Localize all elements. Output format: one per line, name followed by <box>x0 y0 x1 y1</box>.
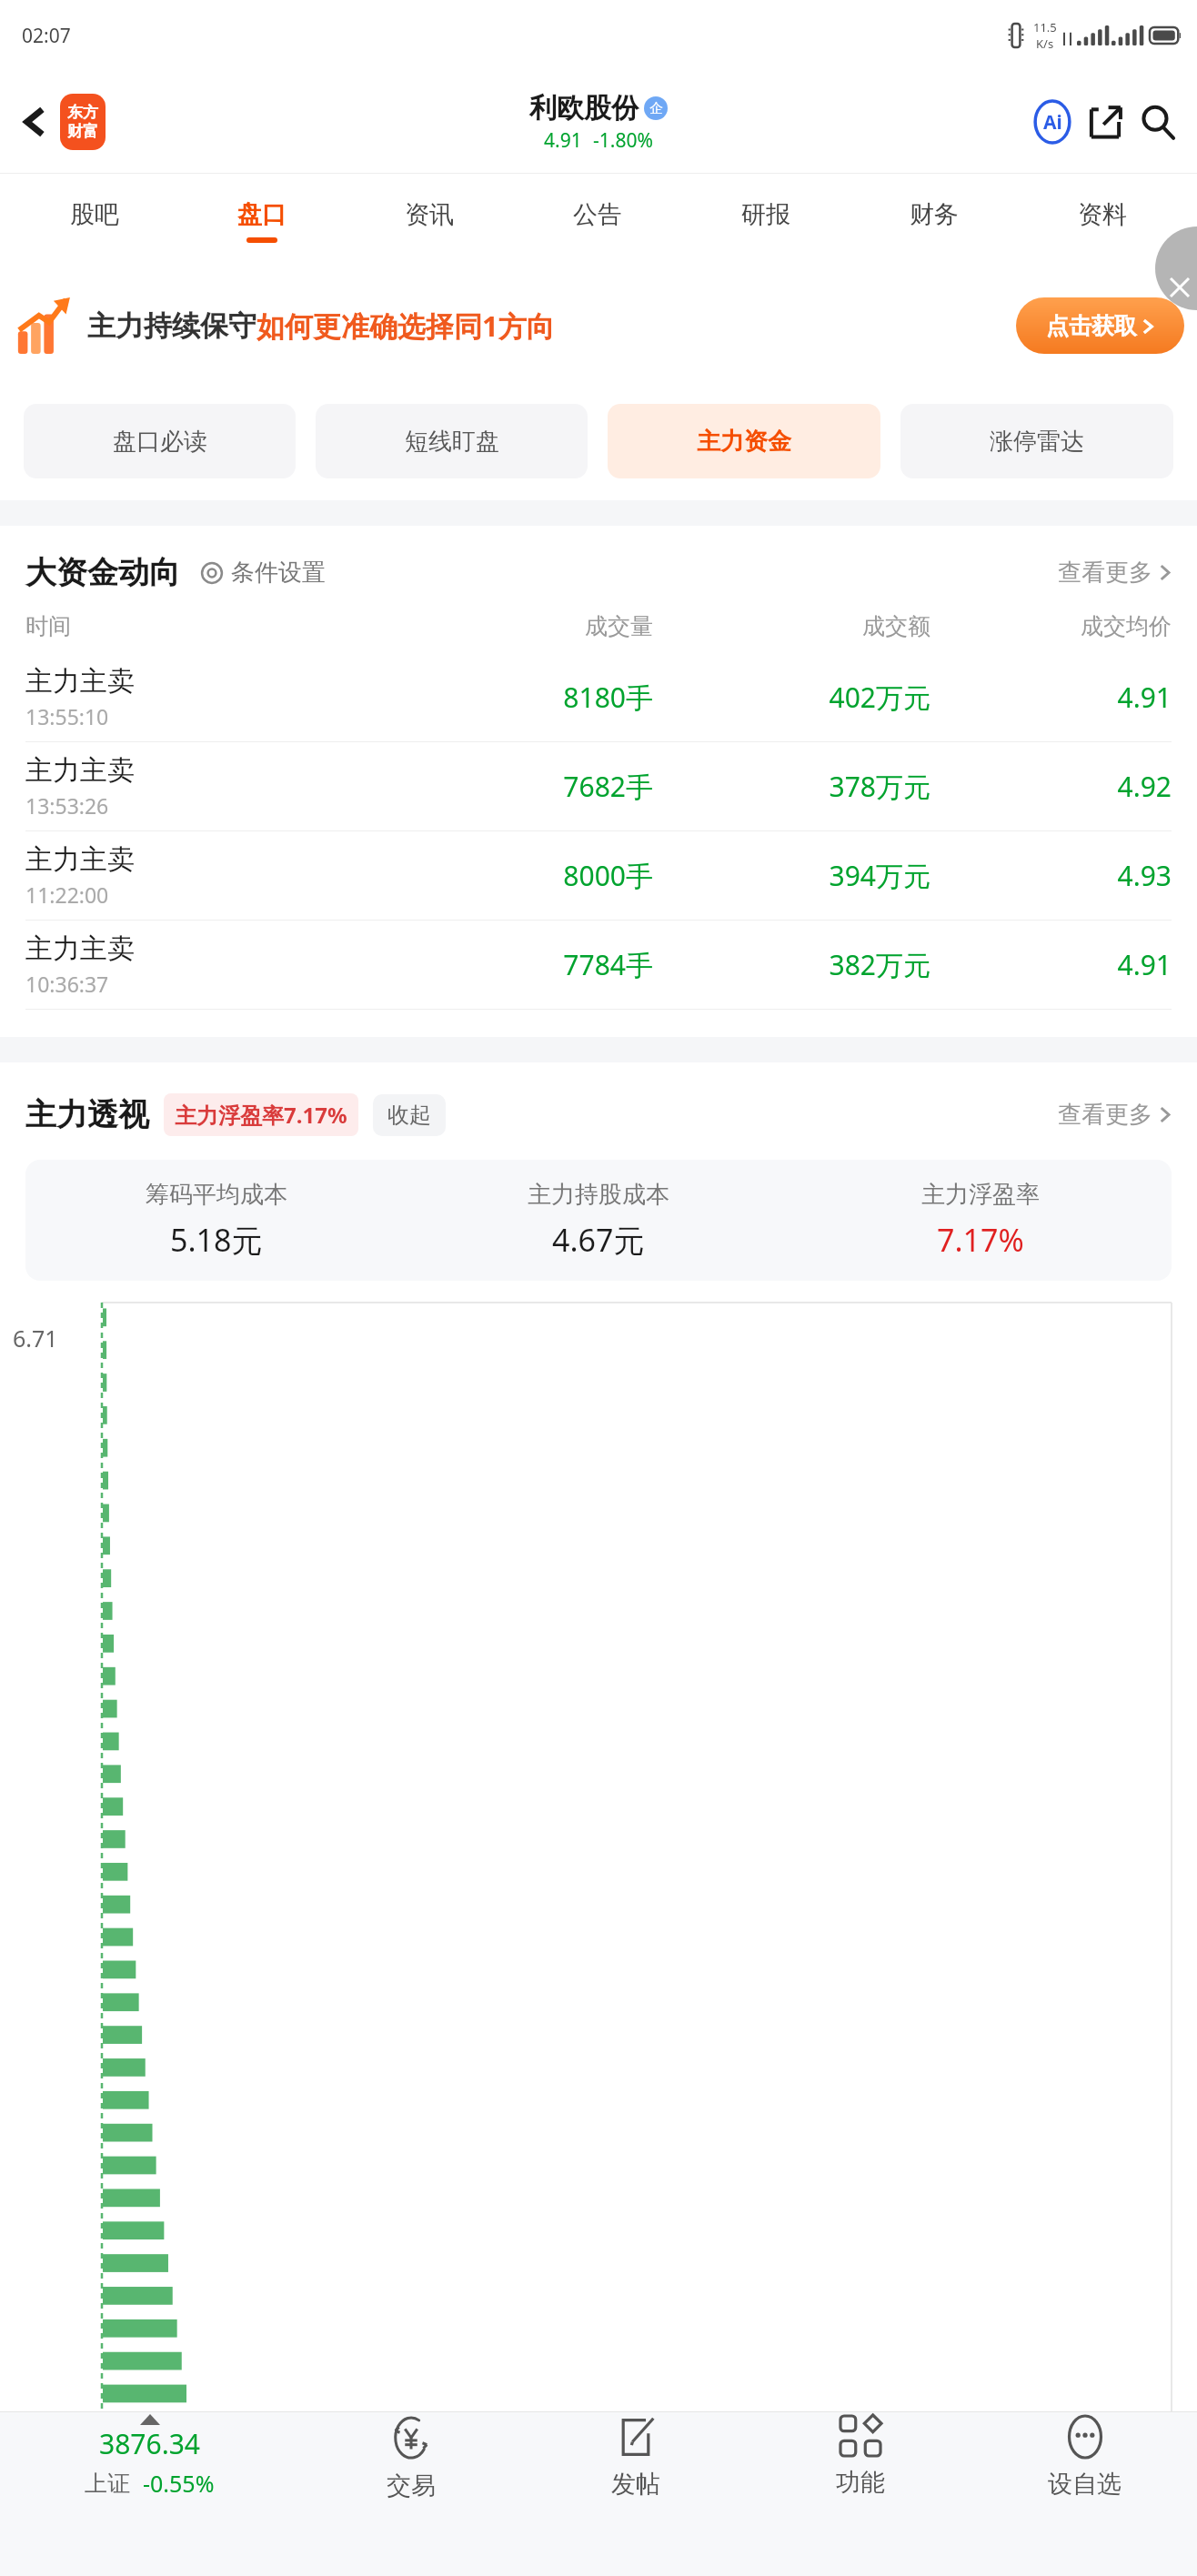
staticText: 02:07 <box>22 23 71 49</box>
staticText: 主力浮盈率7.17% <box>175 1100 347 1130</box>
button[interactable]: 资料 <box>1018 173 1186 268</box>
button[interactable]: 东方财富 <box>60 94 106 150</box>
staticText: 主力透视 <box>25 1095 149 1134</box>
staticText: 功能 <box>836 2467 885 2498</box>
staticText: 8000手 <box>351 857 653 894</box>
button[interactable]: AI <box>1026 96 1079 148</box>
staticText: 11:22:00 <box>25 880 109 909</box>
button[interactable]: 3876.34 <box>0 2412 298 2576</box>
button[interactable]: 股吧 <box>11 173 178 268</box>
button[interactable]: 资讯 <box>346 173 513 268</box>
staticText: 成交均价 <box>930 612 1172 640</box>
staticText: 研报 <box>741 199 790 230</box>
staticText: 时间 <box>25 612 351 640</box>
staticText: 4.91 <box>544 127 582 154</box>
staticText: 4.92 <box>930 768 1172 805</box>
staticText: 主力主卖 <box>25 931 135 966</box>
staticText: 资讯 <box>405 199 454 230</box>
staticText: K/s <box>1036 35 1054 52</box>
button[interactable]: 主力浮盈率7.17% <box>164 1093 358 1136</box>
button[interactable]: 主力主卖 <box>0 921 1197 1009</box>
staticText: 股吧 <box>70 199 119 230</box>
button[interactable]: 查看更多 <box>1058 1100 1172 1130</box>
button[interactable]: 短线盯盘 <box>316 404 588 478</box>
staticText: 发帖 <box>611 2469 660 2500</box>
button[interactable]: 盘口必读 <box>24 404 296 478</box>
staticText: 7682手 <box>351 768 653 805</box>
staticText: 公告 <box>573 199 622 230</box>
staticText: 资料 <box>1078 199 1127 230</box>
staticText: 主力主卖 <box>25 664 135 699</box>
button[interactable]: Search <box>1132 96 1184 148</box>
staticText: 主力浮盈率 <box>921 1180 1040 1210</box>
button[interactable]: 查看更多 <box>1058 558 1172 588</box>
staticText: 13:53:26 <box>25 791 109 820</box>
button[interactable]: 盘口 <box>178 173 346 268</box>
staticText: 6.71 <box>13 1323 58 1353</box>
staticText: 东方 <box>67 103 98 122</box>
button[interactable]: Close <box>1155 268 1197 310</box>
staticText: 378万元 <box>653 768 930 805</box>
staticText: 394万元 <box>653 857 930 894</box>
button[interactable]: 主力主卖 <box>0 653 1197 741</box>
staticText: 4.67元 <box>552 1219 645 1261</box>
button[interactable]: 交易 <box>298 2412 523 2576</box>
staticText: 主力主卖 <box>25 753 135 788</box>
staticText: 短线盯盘 <box>405 427 499 457</box>
staticText: 13:55:10 <box>25 702 109 730</box>
button[interactable]: 涨停雷达 <box>900 404 1173 478</box>
staticText: Ai <box>1043 109 1062 136</box>
button[interactable]: 收起 <box>373 1094 446 1136</box>
button[interactable]: 功能 <box>748 2412 972 2576</box>
button[interactable]: 发帖 <box>523 2412 748 2576</box>
staticText: 盘口必读 <box>113 427 207 457</box>
staticText: 成交量 <box>351 612 653 640</box>
staticText: -0.55% <box>143 2468 215 2499</box>
staticText: 查看更多 <box>1058 558 1152 588</box>
staticText: 382万元 <box>653 946 930 983</box>
button[interactable]: 财务 <box>850 173 1018 268</box>
staticText: 筹码平均成本 <box>146 1180 287 1210</box>
staticText: 交易 <box>387 2470 436 2501</box>
button[interactable]: 条件设置 <box>200 558 326 588</box>
staticText: 7.17% <box>937 1219 1024 1261</box>
button[interactable]: 主力主卖 <box>0 742 1197 830</box>
staticText: 5.18元 <box>170 1219 263 1261</box>
button[interactable]: 主力持续保守 <box>16 268 1184 382</box>
button[interactable]: 主力主卖 <box>0 831 1197 920</box>
staticText: 11.5 <box>1033 19 1057 35</box>
staticText: 大资金动向 <box>25 553 180 592</box>
staticText: 主力主卖 <box>25 842 135 877</box>
staticText: 点击获取 <box>1046 312 1137 340</box>
staticText: 主力资金 <box>697 427 791 457</box>
staticText: 3876.34 <box>99 2425 200 2462</box>
staticText: 涨停雷达 <box>990 427 1084 457</box>
staticText: 402万元 <box>653 679 930 716</box>
staticText: 如何更准确选择同1方向 <box>256 307 555 345</box>
staticText: -1.80% <box>593 127 653 154</box>
staticText: 条件设置 <box>231 558 326 588</box>
button[interactable]: Share <box>1079 96 1132 148</box>
staticText: 主力持续保守 <box>87 308 256 344</box>
staticText: 7784手 <box>351 946 653 983</box>
staticText: 主力持股成本 <box>528 1180 669 1210</box>
staticText: 企 <box>649 100 663 117</box>
staticText: 利欧股份 <box>529 91 639 126</box>
button[interactable]: 设自选 <box>972 2412 1197 2576</box>
staticText: 4.93 <box>930 857 1172 894</box>
button[interactable]: Back <box>9 96 60 147</box>
button[interactable]: 主力资金 <box>608 404 880 478</box>
button[interactable]: 点击获取 <box>1016 297 1184 354</box>
staticText: 查看更多 <box>1058 1100 1152 1130</box>
staticText: 收起 <box>387 1102 431 1129</box>
staticText: 10:36:37 <box>25 970 109 998</box>
staticText: 成交额 <box>653 612 930 640</box>
staticText: 8180手 <box>351 679 653 716</box>
staticText: 4.91 <box>930 679 1172 716</box>
button[interactable]: 公告 <box>513 173 681 268</box>
staticText: 财务 <box>910 199 959 230</box>
staticText: 盘口 <box>237 199 287 230</box>
button[interactable]: 研报 <box>681 173 850 268</box>
staticText: 上证 <box>85 2470 130 2498</box>
staticText: 4.91 <box>930 946 1172 983</box>
